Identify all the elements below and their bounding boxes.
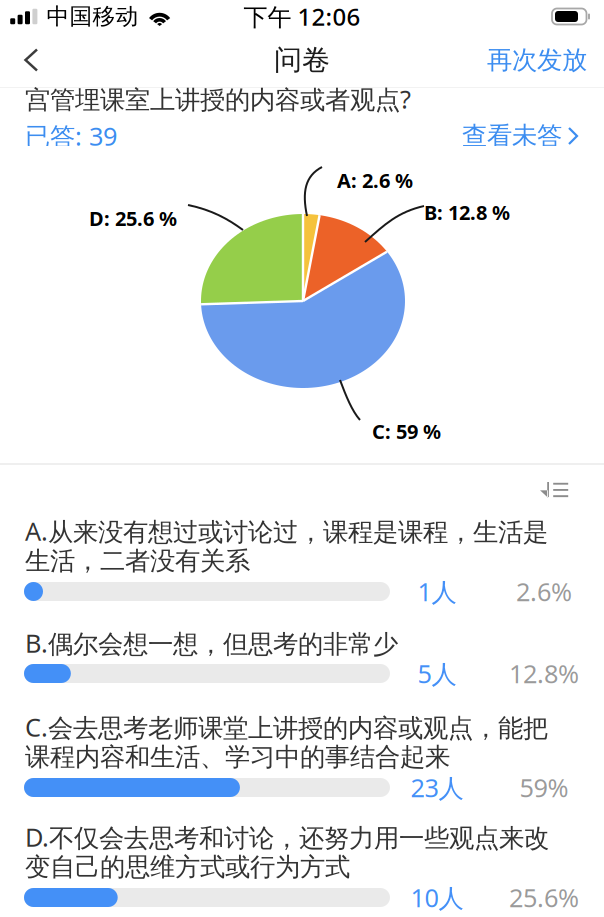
staticText: 下午 12:06 [243, 1, 360, 32]
staticText: D: 25.6 % [89, 205, 177, 232]
staticText: 12.8% [509, 657, 579, 690]
staticText: A: 2.6 % [337, 167, 413, 194]
staticText: 查看未答 [462, 120, 562, 151]
staticText: 59% [519, 771, 568, 804]
button[interactable]: 返回 [0, 33, 61, 87]
staticText: B.偶尔会想一想，但思考的非常少 [25, 626, 398, 660]
staticText: 10人 [410, 881, 463, 914]
staticText: 已答: 39 [25, 119, 117, 153]
staticText: A.从来没有想过或讨论过，课程是课程，生活是 [25, 514, 548, 548]
button[interactable]: 排序 [520, 468, 604, 506]
staticText: B: 12.8 % [424, 199, 510, 226]
staticText: 中国移动 [47, 3, 139, 30]
staticText: 25.6% [509, 881, 579, 914]
staticText: 5人 [417, 657, 456, 690]
staticText: 生活，二者没有关系 [25, 545, 250, 576]
staticText: C.会去思考老师课堂上讲授的内容或观点，能把 [25, 710, 548, 744]
staticText: 宫管埋课室上讲授的内容或者观点? [25, 82, 411, 116]
staticText: C: 59 % [372, 418, 441, 445]
staticText: 再次发放 [487, 44, 587, 75]
staticText: 课程内容和生活、学习中的事结合起来 [25, 741, 450, 772]
staticText: 变自己的思维方式或行为方式 [25, 851, 350, 882]
staticText: D.不仅会去思考和讨论，还努力用一些观点来改 [25, 820, 549, 854]
staticText: 问卷 [274, 43, 330, 77]
staticText: 23人 [410, 771, 463, 804]
staticText: 2.6% [516, 575, 572, 608]
button[interactable]: 再次发放 [469, 33, 604, 87]
button[interactable]: 查看未答 [462, 120, 579, 151]
staticText: 1人 [417, 575, 456, 608]
